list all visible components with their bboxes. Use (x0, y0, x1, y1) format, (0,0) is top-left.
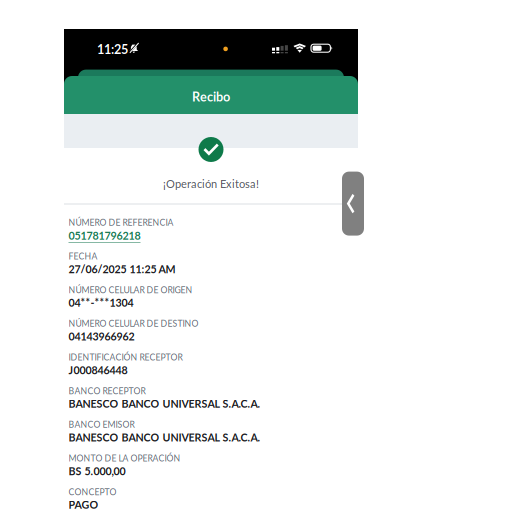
staticText: ¡Operación Exitosa! (163, 177, 259, 190)
staticText: 04**-***1304 (68, 296, 133, 309)
staticText: CONCEPTO (68, 487, 116, 497)
staticText: IDENTIFICACIÓN RECEPTOR (68, 352, 182, 362)
staticText: Recibo (192, 89, 230, 104)
staticText: BANESCO BANCO UNIVERSAL S.A.C.A. (68, 397, 260, 410)
button[interactable]: Volver (342, 172, 364, 236)
staticText: 04143966962 (68, 330, 134, 343)
staticText: FECHA (68, 251, 97, 261)
staticText: J000846448 (68, 364, 127, 376)
staticText: 27/06/2025 11:25 AM (68, 263, 175, 275)
staticText: BANCO RECEPTOR (68, 386, 145, 396)
staticText: 11:25 (97, 41, 128, 57)
staticText: 051781796218 (68, 229, 140, 242)
staticText: BANCO EMISOR (68, 419, 134, 430)
staticText: NÚMERO CELULAR DE ORIGEN (68, 285, 192, 295)
staticText: NÚMERO CELULAR DE DESTINO (68, 318, 198, 329)
staticText: NÚMERO DE REFERENCIA (68, 217, 173, 228)
staticText: PAGO (68, 498, 98, 511)
staticText: BANESCO BANCO UNIVERSAL S.A.C.A. (68, 431, 260, 444)
staticText: MONTO DE LA OPERACIÓN (68, 453, 180, 463)
staticText: BS 5.000,00 (68, 465, 125, 477)
